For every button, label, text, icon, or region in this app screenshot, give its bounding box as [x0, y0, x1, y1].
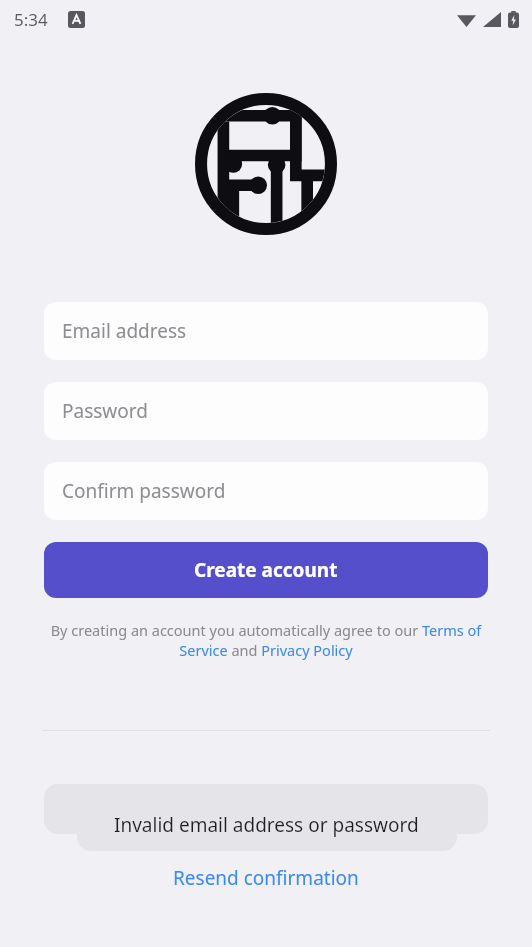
staticText: Confirm password [62, 478, 226, 504]
other: App logo [195, 93, 337, 235]
button[interactable]: Password [44, 382, 488, 440]
staticText: 5:34 [14, 8, 48, 31]
staticText: Invalid email address or password [114, 812, 419, 838]
button[interactable]: Resend confirmation [163, 861, 369, 895]
staticText: Password [62, 398, 148, 424]
button[interactable]: Email address [44, 302, 488, 360]
button[interactable]: Confirm password [44, 462, 488, 520]
staticText: By creating an account you automatically… [36, 620, 496, 661]
staticText: Resend confirmation [173, 865, 359, 891]
staticText: Create account [194, 557, 338, 583]
staticText: Email address [62, 318, 187, 344]
button[interactable]: Create account [44, 542, 488, 598]
